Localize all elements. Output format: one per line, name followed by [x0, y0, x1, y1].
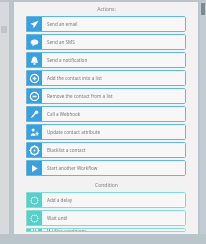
staticText: Add a delay	[47, 197, 73, 203]
button[interactable]: Send a notification	[26, 52, 186, 68]
button[interactable]: Wait until	[26, 210, 186, 226]
button[interactable]: Update contact attribute	[26, 124, 186, 140]
staticText: Remove the contact from a list	[47, 93, 113, 99]
staticText: Add the contact into a list	[47, 75, 102, 81]
staticText: Start another Workflow	[47, 165, 98, 171]
button[interactable]: Send an SMS	[26, 34, 186, 50]
button[interactable]: Add the contact into a list	[26, 70, 186, 86]
staticText: Send a notification	[47, 57, 88, 63]
staticText: Send an email	[47, 21, 78, 27]
staticText: Wait until	[47, 215, 68, 221]
button[interactable]: Remove the contact from a list	[26, 88, 186, 104]
staticText: Send an SMS	[47, 39, 75, 45]
button[interactable]: Send an email	[26, 16, 186, 32]
staticText: Blacklist a contact	[47, 147, 86, 153]
button[interactable]: Blacklist a contact	[26, 142, 186, 158]
button[interactable]: Add a delay	[26, 192, 186, 208]
button[interactable]: If / Else conditions	[26, 228, 186, 232]
staticText: Actions:	[97, 6, 116, 13]
staticText: If / Else conditions	[47, 228, 87, 232]
staticText: Condition	[95, 182, 118, 189]
staticText: Update contact attribute	[47, 129, 101, 135]
staticText: Call a Webhook	[47, 111, 81, 117]
button[interactable]: Call a Webhook	[26, 106, 186, 122]
button[interactable]: Start another Workflow	[26, 160, 186, 176]
